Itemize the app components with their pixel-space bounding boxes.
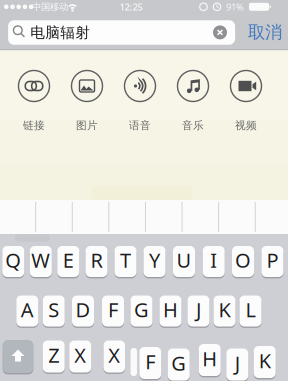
staticText: R xyxy=(90,247,102,273)
staticText: 链接 xyxy=(23,119,45,132)
button[interactable]: X xyxy=(103,339,125,373)
staticText: E xyxy=(63,247,74,273)
staticText: Z xyxy=(48,342,59,368)
button[interactable]: 搜索 xyxy=(8,20,235,45)
staticText: 取消 xyxy=(248,22,282,43)
button[interactable]: F xyxy=(102,294,124,327)
button[interactable]: E xyxy=(57,245,79,278)
button[interactable]: L xyxy=(239,294,261,327)
button[interactable]: H xyxy=(159,294,181,327)
staticText: 中国移动 xyxy=(32,1,68,13)
button[interactable]: J xyxy=(226,347,248,381)
staticText: J xyxy=(235,350,240,376)
button[interactable]: P xyxy=(261,245,283,278)
staticText: P xyxy=(266,247,278,273)
button[interactable]: O xyxy=(232,245,254,278)
button[interactable]: I xyxy=(203,245,225,278)
button[interactable]: A xyxy=(16,294,38,327)
staticText: X xyxy=(74,342,86,368)
staticText: 语音 xyxy=(129,119,151,132)
staticText: K xyxy=(259,347,271,374)
button[interactable]: 链接 xyxy=(12,62,56,138)
staticText: L xyxy=(245,296,255,323)
button[interactable]: 图片 xyxy=(65,62,109,138)
staticText: I xyxy=(210,247,217,273)
staticText: F xyxy=(108,296,118,323)
staticText: X xyxy=(108,342,120,368)
button[interactable]: U xyxy=(173,245,195,278)
staticText: 音乐 xyxy=(182,119,204,132)
button[interactable]: W xyxy=(30,245,52,278)
button[interactable]: Q xyxy=(2,245,24,278)
button[interactable]: Y xyxy=(143,245,165,278)
button[interactable]: J xyxy=(187,294,209,327)
button[interactable]: R xyxy=(85,245,107,278)
staticText: O xyxy=(235,247,251,273)
staticText: J xyxy=(196,296,201,323)
button[interactable]: K xyxy=(254,345,276,379)
staticText: 图片 xyxy=(76,119,98,132)
staticText: A xyxy=(21,296,34,323)
button[interactable]: 音乐 xyxy=(171,62,215,138)
button[interactable]: H xyxy=(199,343,221,377)
button[interactable]: S xyxy=(43,294,65,327)
button[interactable]: D xyxy=(72,294,94,327)
button[interactable]: 取消 xyxy=(248,22,282,43)
button[interactable]: 语音 xyxy=(118,62,162,138)
staticText: F xyxy=(145,348,155,375)
staticText: G xyxy=(171,350,186,376)
staticText: H xyxy=(202,345,217,372)
button[interactable]: G xyxy=(168,347,190,381)
staticText: 电脑辐射 xyxy=(30,23,90,41)
staticText: D xyxy=(75,296,90,323)
staticText: K xyxy=(218,296,230,323)
staticText: Q xyxy=(5,247,21,273)
staticText: W xyxy=(31,247,50,273)
staticText: U xyxy=(176,247,191,273)
button[interactable]: 视频 xyxy=(224,62,268,138)
button[interactable]: Z xyxy=(43,339,65,373)
button[interactable]: F xyxy=(139,346,161,380)
button[interactable]: X xyxy=(69,339,91,373)
staticText: H xyxy=(163,296,178,323)
staticText: T xyxy=(120,247,131,273)
staticText: Y xyxy=(149,247,160,273)
staticText: 91% xyxy=(226,1,244,13)
staticText: 12:25 xyxy=(119,1,142,13)
staticText: G xyxy=(134,296,149,323)
button[interactable]: T xyxy=(114,245,136,278)
button[interactable]: 清除 xyxy=(213,25,227,39)
staticText: S xyxy=(48,296,59,323)
staticText: 视频 xyxy=(235,119,257,132)
button[interactable]: G xyxy=(130,294,152,327)
button[interactable]: Shift xyxy=(3,339,33,373)
button[interactable]: K xyxy=(213,294,235,327)
